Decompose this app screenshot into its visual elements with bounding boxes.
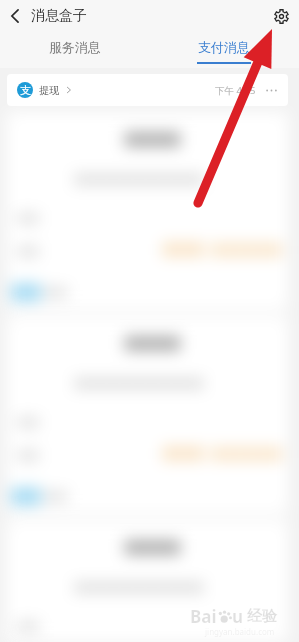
- staticText: Bai: [190, 605, 217, 628]
- staticText: jingyan.baidu.com: [205, 626, 275, 637]
- button[interactable]: [7, 520, 288, 642]
- button[interactable]: More options: [264, 83, 278, 97]
- button[interactable]: 支付消息: [149, 31, 299, 68]
- staticText: 支付消息: [198, 39, 250, 55]
- staticText: 下午 4:55: [215, 84, 256, 97]
- staticText: 支: [20, 83, 31, 97]
- button[interactable]: [7, 316, 288, 514]
- button[interactable]: 服务消息: [0, 31, 149, 68]
- staticText: u: [232, 605, 244, 628]
- button[interactable]: [7, 112, 288, 310]
- button[interactable]: 支: [7, 74, 288, 106]
- button[interactable]: Settings: [269, 4, 293, 28]
- staticText: 消息盒子: [31, 7, 87, 25]
- staticText: 服务消息: [49, 39, 101, 55]
- staticText: 提现: [39, 84, 59, 97]
- button[interactable]: Back: [2, 3, 28, 29]
- staticText: 经验: [247, 607, 277, 626]
